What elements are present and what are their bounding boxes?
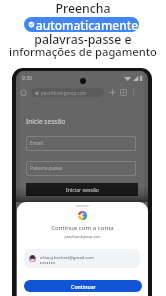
other: New tab [109,89,116,96]
staticText: Continuar [71,283,96,290]
button[interactable]: Iniciar sessão [26,183,138,196]
staticText: 9:30 [22,75,32,82]
other: More options [132,89,135,96]
staticText: peachbankgroup.com [17,234,148,239]
staticText: peachbankgroup.com [41,90,87,96]
button[interactable]: peachbankgroup.com [31,88,104,97]
staticText: Preencha [0,0,166,17]
button[interactable]: Palavra-passe [26,161,136,176]
other: Google [78,211,87,220]
staticText: palavras-passe e [0,31,166,48]
button[interactable]: Email [26,136,136,151]
button[interactable]: elisa.g.beckett@gmail.com [24,249,140,268]
button[interactable]: automaticamente [24,17,139,32]
button[interactable]: Continuar [24,280,142,292]
staticText: informações de pagamento [0,44,166,59]
staticText: Inicie sessão [26,117,66,126]
staticText: Iniciar sessão [66,186,99,193]
staticText: Continue com a conta [17,223,148,231]
staticText: Palavra-passe [30,165,63,172]
staticText: automaticamente [35,17,139,32]
staticText: elisa.g.beckett@gmail.com [40,254,94,260]
staticText: Email [30,140,43,147]
other: Tabs [120,89,127,96]
